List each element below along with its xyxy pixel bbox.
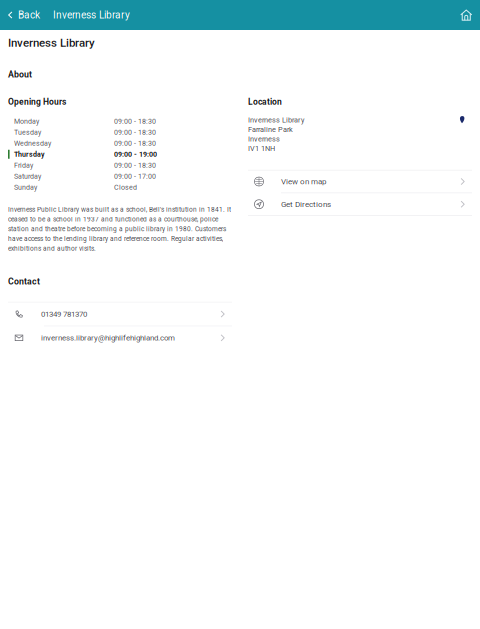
staticText: exhibitions and author visits.: [8, 245, 96, 252]
staticText: ceased to be a school in 1937 and functi…: [8, 215, 218, 223]
staticText: Saturday: [14, 172, 41, 180]
staticText: Wednesday: [14, 139, 51, 147]
staticText: Location: [248, 97, 282, 107]
staticText: 09:00 - 18:30: [114, 117, 156, 125]
staticText: 09:00 - 18:30: [114, 128, 156, 136]
staticText: Inverness Library: [53, 9, 130, 21]
staticText: 01349 781370: [41, 309, 87, 319]
staticText: Friday: [14, 161, 33, 169]
staticText: Inverness Library: [248, 116, 304, 124]
staticText: have access to the lending library and r…: [8, 235, 223, 243]
button[interactable]: Home: [449, 0, 480, 29]
staticText: Inverness: [248, 135, 280, 143]
staticText: Farraline Park: [248, 125, 293, 134]
staticText: Monday: [14, 117, 39, 125]
staticText: Opening Hours: [8, 97, 66, 107]
button[interactable]: Get Directions: [248, 193, 472, 215]
staticText: Inverness Library: [8, 36, 95, 49]
staticText: Tuesday: [14, 128, 41, 136]
staticText: 09:00 - 19:00: [114, 150, 157, 158]
staticText: Back: [18, 9, 40, 21]
staticText: Contact: [8, 276, 40, 287]
button[interactable]: 01349 781370: [8, 302, 232, 325]
staticText: Thursday: [14, 150, 45, 158]
staticText: Get Directions: [281, 199, 331, 209]
button[interactable]: View on map: [248, 170, 472, 192]
staticText: View on map: [281, 177, 326, 186]
staticText: Closed: [114, 183, 137, 191]
staticText: 09:00 - 18:30: [114, 161, 156, 169]
button[interactable]: inverness.library@highlifehighland.com: [8, 326, 232, 349]
button[interactable]: Back: [0, 0, 48, 30]
staticText: About: [8, 69, 32, 80]
staticText: station and theatre before becoming a pu…: [8, 225, 226, 233]
staticText: Inverness Public Library was built as a …: [8, 206, 231, 213]
staticText: inverness.library@highlifehighland.com: [41, 333, 175, 342]
staticText: 09:00 - 17:00: [114, 172, 156, 180]
staticText: Sunday: [14, 183, 37, 191]
staticText: IV1 1NH: [248, 144, 275, 153]
staticText: 09:00 - 18:30: [114, 139, 156, 147]
